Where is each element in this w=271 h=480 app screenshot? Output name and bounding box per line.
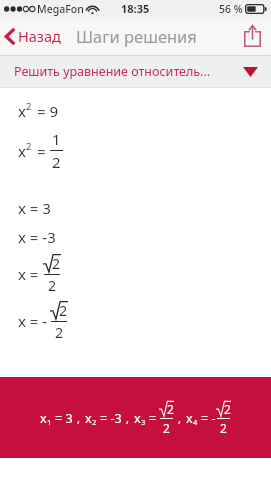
staticText: MegaFon <box>37 2 84 16</box>
button[interactable]: Share <box>234 19 271 53</box>
staticText: = -3 <box>100 410 122 427</box>
staticText: , <box>178 411 182 426</box>
staticText: 56 % <box>219 2 243 16</box>
staticText: Решить уравнение относитель... <box>14 63 211 80</box>
staticText: = 3 <box>55 410 73 427</box>
staticText: 3 <box>141 417 146 427</box>
staticText: 4 <box>193 417 198 427</box>
staticText: 18:35 <box>121 1 150 16</box>
staticText: , <box>77 411 81 426</box>
staticText: 2 <box>26 140 32 153</box>
button[interactable]: Назад <box>0 19 69 53</box>
staticText: 2 <box>59 301 68 320</box>
staticText: = - <box>201 410 216 427</box>
staticText: x <box>134 410 141 427</box>
staticText: x = <box>18 264 39 284</box>
staticText: x = 3 <box>18 198 51 218</box>
button[interactable]: Решить уравнение относитель... <box>0 56 271 87</box>
staticText: 2 <box>48 276 57 295</box>
staticText: = <box>37 141 46 161</box>
staticText: 2 <box>52 254 61 273</box>
staticText: x <box>186 410 193 427</box>
staticText: = <box>149 410 157 427</box>
staticText: 2 <box>55 323 64 342</box>
staticText: x = -3 <box>18 227 56 247</box>
staticText: x <box>18 101 26 121</box>
staticText: 1 <box>52 129 61 149</box>
staticText: 2 <box>224 401 231 417</box>
staticText: x <box>85 410 92 427</box>
staticText: 2 <box>52 152 61 172</box>
staticText: x = - <box>18 311 48 331</box>
staticText: 2 <box>163 420 170 436</box>
staticText: , <box>126 411 130 426</box>
staticText: 1 <box>47 417 52 427</box>
staticText: Назад <box>18 26 61 46</box>
staticText: 2 <box>167 401 174 417</box>
staticText: x <box>40 410 47 427</box>
staticText: x <box>18 141 26 161</box>
staticText: Шаги решения <box>76 25 197 47</box>
staticText: = 9 <box>37 101 59 121</box>
button[interactable]: x <box>0 377 271 458</box>
staticText: 2 <box>92 417 97 427</box>
staticText: 2 <box>220 420 227 436</box>
staticText: 2 <box>26 100 32 113</box>
